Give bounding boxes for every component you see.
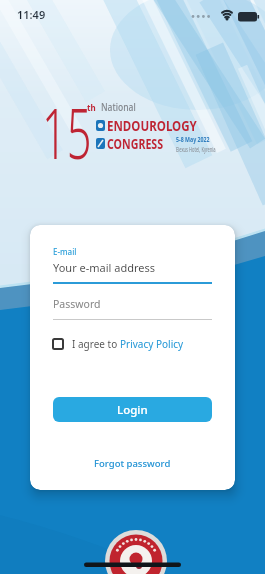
staticText: ENDOUROLOGY [107, 115, 197, 135]
staticText: 5-8 May 2022 [176, 135, 210, 145]
button[interactable]: I agree to [52, 337, 184, 351]
button[interactable]: Privacy Policy [120, 337, 184, 351]
staticText: CONGRESS [107, 133, 164, 153]
button[interactable]: Forgot password [94, 457, 171, 470]
staticText: I agree to [72, 337, 120, 351]
staticText: Password [53, 297, 101, 311]
button[interactable]: E-mail [53, 246, 212, 284]
staticText: 15 [42, 84, 92, 179]
staticText: National [101, 100, 136, 114]
staticText: Login [117, 402, 148, 418]
button[interactable]: Login [53, 397, 212, 422]
staticText: Elexus Hotel, Kyrenia [176, 145, 216, 154]
staticText: Your e-mail address [53, 260, 156, 275]
staticText: th [87, 102, 96, 113]
button[interactable]: Password [53, 297, 212, 320]
staticText: 11:49 [17, 7, 46, 22]
staticText: E-mail [53, 246, 77, 257]
